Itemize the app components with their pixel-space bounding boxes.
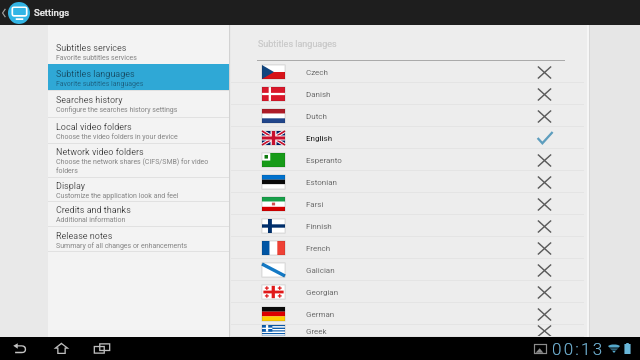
button[interactable]: Network video folders [48,143,229,177]
staticText: Additional information [56,216,126,224]
staticText: Favorite subtitles languages [56,80,144,88]
staticText: Georgian [306,288,339,297]
button[interactable]: English [231,127,587,149]
button[interactable]: Greek [231,325,587,337]
button[interactable]: Esperanto [231,149,587,171]
button[interactable]: Estonian [231,171,587,193]
staticText: Choose the network shares (CIFS/SMB) for… [56,158,225,175]
staticText: Subtitles services [56,43,127,54]
button[interactable]: Danish [231,83,587,105]
staticText: Release notes [56,231,113,242]
button[interactable]: Display [48,177,229,201]
staticText: English [306,134,333,143]
staticText: Galician [306,266,335,275]
button[interactable]: French [231,237,587,259]
staticText: Summary of all changes or enhancements [56,242,188,250]
staticText: Configure the searches history settings [56,106,178,114]
staticText: Network video folders [56,147,144,158]
staticText: 00:13 [552,339,605,359]
button[interactable]: Czech [231,61,587,83]
button[interactable]: Back [4,337,36,360]
staticText: Credits and thanks [56,205,131,216]
staticText: German [306,310,335,319]
button[interactable]: Galician [231,259,587,281]
button[interactable]: German [231,303,587,325]
button[interactable]: Subtitles languages [48,64,229,90]
button[interactable]: Local video folders [48,117,229,143]
staticText: Display [56,181,86,192]
staticText: French [306,244,331,253]
button[interactable]: Searches history [48,90,229,117]
button[interactable]: Release notes [48,226,229,252]
button[interactable]: Home [47,337,75,360]
button[interactable]: Subtitles services [48,38,229,64]
staticText: Customize the application look and feel [56,192,179,200]
button[interactable]: Georgian [231,281,587,303]
button[interactable]: Farsi [231,193,587,215]
staticText: Subtitles languages [56,69,135,80]
button[interactable]: Credits and thanks [48,201,229,226]
staticText: Searches history [56,95,123,106]
staticText: Danish [306,90,331,99]
staticText: Estonian [306,178,337,187]
staticText: Settings [34,7,70,18]
staticText: Dutch [306,112,327,121]
staticText: Favorite subtitles services [56,54,137,62]
button[interactable]: Finnish [231,215,587,237]
staticText: Farsi [306,200,324,209]
staticText: Finnish [306,222,332,231]
staticText: Esperanto [306,156,342,165]
staticText: Czech [306,68,328,77]
button[interactable]: Dutch [231,105,587,127]
button[interactable]: Recent apps [87,337,117,360]
button[interactable]: Back [0,0,7,25]
staticText: Subtitles languages [258,39,337,50]
staticText: Greek [306,327,327,336]
staticText: Choose the video folders in your device [56,133,178,141]
staticText: Local video folders [56,122,132,133]
